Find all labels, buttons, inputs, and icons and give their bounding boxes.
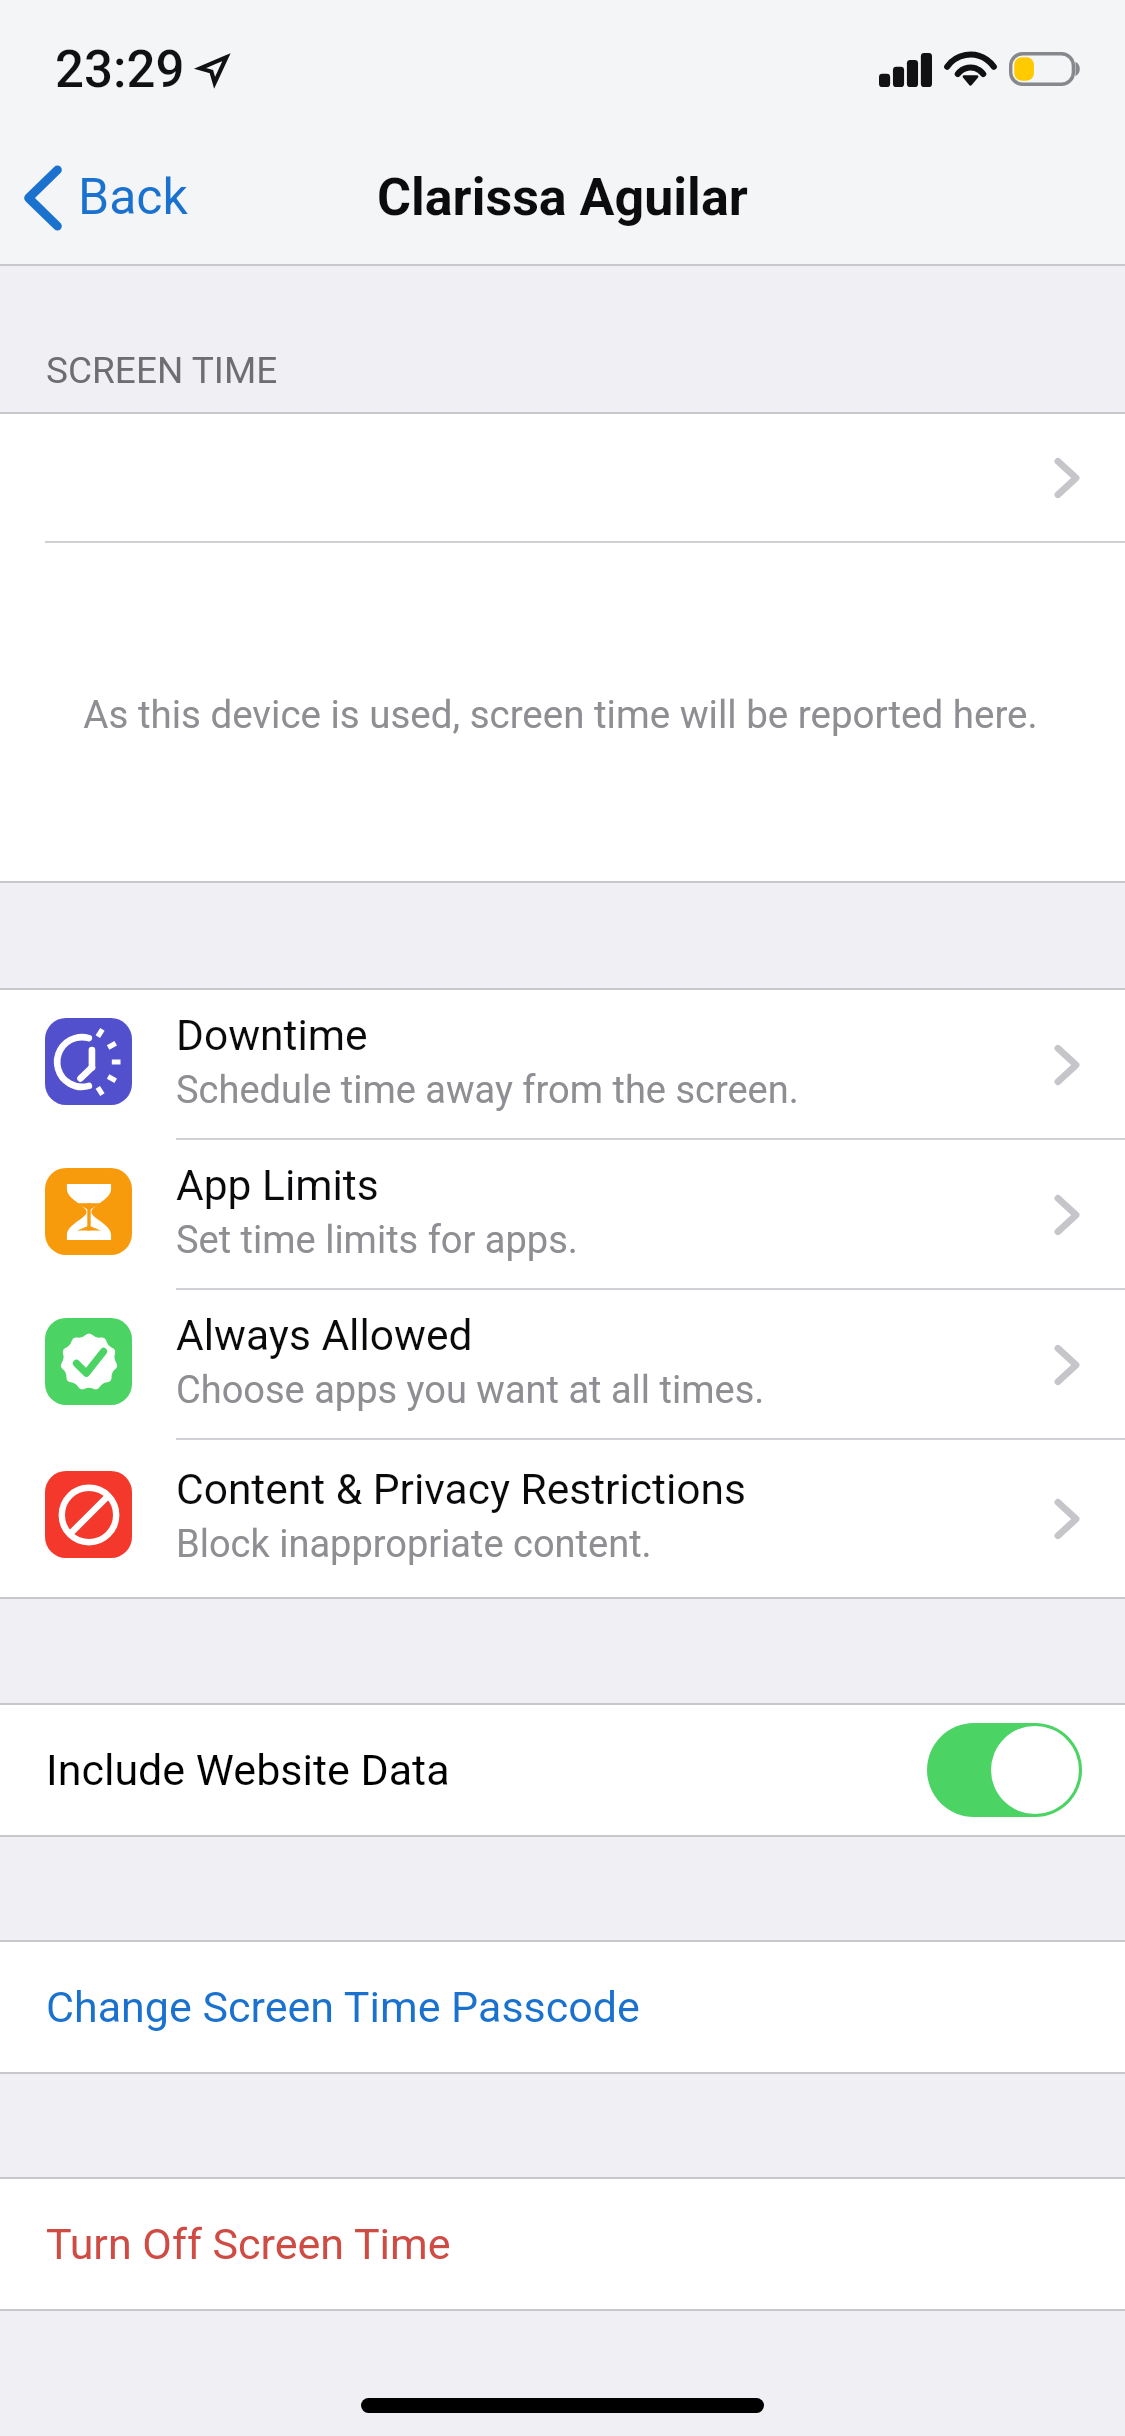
staticText: 23:29 bbox=[55, 40, 185, 100]
staticText: Content & Privacy Restrictions bbox=[176, 1465, 746, 1515]
staticText: Block inappropriate content. bbox=[176, 1522, 652, 1567]
staticText: SCREEN TIME bbox=[46, 349, 278, 392]
staticText: Schedule time away from the screen. bbox=[176, 1068, 799, 1113]
button[interactable]: Include Website Data bbox=[0, 1705, 1125, 1835]
staticText: App Limits bbox=[176, 1161, 379, 1211]
button[interactable]: Turn Off Screen Time bbox=[0, 2179, 1125, 2309]
staticText: Choose apps you want at all times. bbox=[176, 1368, 765, 1413]
staticText: Always Allowed bbox=[176, 1311, 473, 1361]
staticText: Back bbox=[78, 168, 188, 227]
staticText: Downtime bbox=[176, 1011, 368, 1061]
staticText: As this device is used, screen time will… bbox=[83, 692, 1038, 737]
button[interactable]: Always Allowed bbox=[0, 1290, 1125, 1440]
staticText: Change Screen Time Passcode bbox=[46, 1982, 640, 2032]
button[interactable]: Change Screen Time Passcode bbox=[0, 1942, 1125, 2072]
staticText: Clarissa Aguilar bbox=[377, 167, 748, 228]
staticText: Set time limits for apps. bbox=[176, 1218, 578, 1263]
staticText: Include Website Data bbox=[46, 1745, 450, 1795]
button[interactable]: Downtime bbox=[0, 990, 1125, 1140]
button[interactable]: App Limits bbox=[0, 1140, 1125, 1290]
staticText: Turn Off Screen Time bbox=[46, 2219, 451, 2269]
button[interactable]: Back bbox=[0, 152, 212, 244]
button[interactable]: Content & Privacy Restrictions bbox=[0, 1440, 1125, 1597]
button[interactable]: Include Website Data toggle bbox=[927, 1723, 1082, 1817]
